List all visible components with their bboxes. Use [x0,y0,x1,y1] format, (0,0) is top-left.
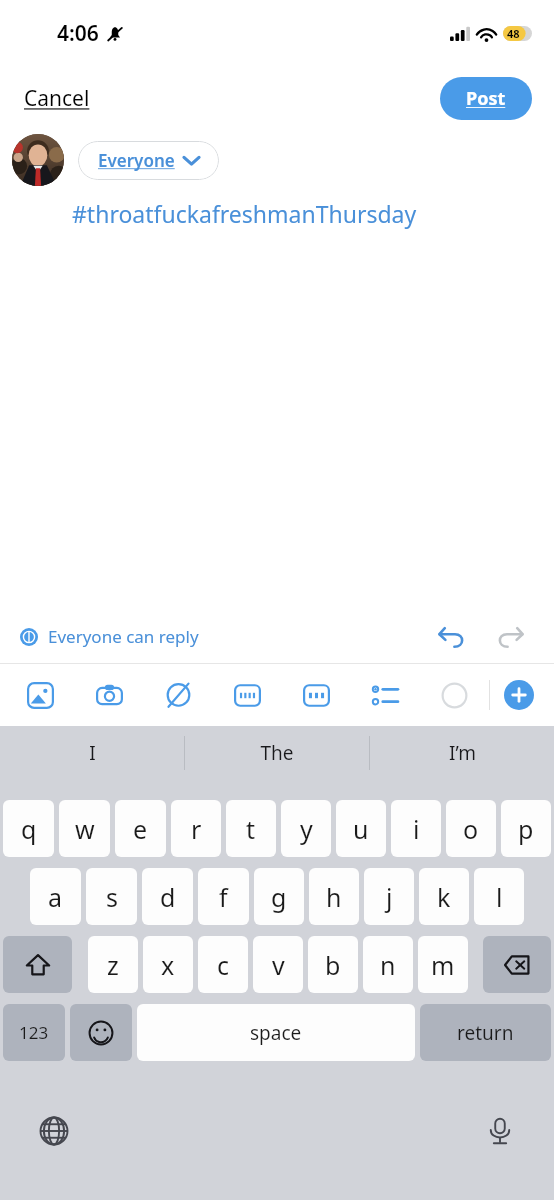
staticText: Post [466,86,506,111]
button[interactable]: Go live [213,664,282,726]
button[interactable]: Schedule [420,664,489,726]
staticText: z [107,948,119,982]
button[interactable]: g [254,868,304,925]
staticText: y [300,812,313,846]
staticText: u [353,812,369,846]
button[interactable]: l [474,868,524,925]
staticText: i [413,812,420,846]
button[interactable]: Everyone can reply [20,625,199,648]
button[interactable]: Switch keyboard [32,1109,76,1153]
button[interactable]: Redo [490,616,530,656]
staticText: r [191,812,202,846]
button[interactable]: Everyone [78,141,219,180]
staticText: space [250,1020,302,1046]
button[interactable]: t [226,800,276,857]
button[interactable]: r [171,800,221,857]
button[interactable]: Camera [75,664,144,726]
staticText: I [89,740,96,766]
staticText: 4:06 [57,19,99,48]
staticText: Everyone can reply [48,625,199,648]
staticText: n [380,948,396,982]
button[interactable]: Backspace [483,936,551,993]
button[interactable]: a [30,868,81,925]
staticText: v [272,948,285,982]
staticText: c [217,948,230,982]
button[interactable]: o [446,800,496,857]
button[interactable]: j [364,868,414,925]
staticText: k [437,880,451,914]
button[interactable]: space [137,1004,415,1061]
button[interactable]: Add poll [351,664,420,726]
staticText: m [431,948,455,982]
button[interactable]: Emoji [70,1004,132,1061]
button[interactable]: The [185,726,369,780]
staticText: 123 [19,1021,49,1044]
button[interactable]: b [308,936,358,993]
button[interactable]: v [253,936,303,993]
button[interactable]: i [391,800,441,857]
button[interactable]: w [59,800,110,857]
staticText: Everyone [98,149,175,172]
button[interactable]: I [0,726,184,780]
button[interactable]: u [336,800,386,857]
staticText: h [326,880,342,914]
button[interactable]: c [198,936,248,993]
staticText: I’m [449,740,476,766]
staticText: w [75,812,95,846]
button[interactable]: Undo [432,616,472,656]
button[interactable]: 123 [3,1004,65,1061]
button[interactable]: I’m [370,726,554,780]
button[interactable]: d [142,868,193,925]
button[interactable]: n [363,936,413,993]
staticText: p [518,812,534,846]
staticText: d [160,880,176,914]
button[interactable]: e [115,800,166,857]
button[interactable]: x [143,936,193,993]
staticText: 48 [507,26,520,41]
button[interactable]: h [309,868,359,925]
staticText: t [246,812,256,846]
button[interactable]: z [88,936,138,993]
button[interactable]: y [281,800,331,857]
staticText: s [106,880,118,914]
button[interactable]: q [3,800,54,857]
button[interactable]: Post [440,77,532,120]
staticText: Cancel [24,84,90,113]
staticText: o [463,812,479,846]
button[interactable]: Add [490,680,548,710]
staticText: e [133,812,148,846]
button[interactable]: Dictate [478,1109,522,1153]
button[interactable]: Add GIF [282,664,351,726]
button[interactable]: m [418,936,468,993]
button[interactable]: p [501,800,551,857]
staticText: q [21,812,37,846]
button[interactable]: Edit image [144,664,213,726]
button[interactable]: s [86,868,137,925]
button[interactable]: Shift [3,936,72,993]
staticText: l [496,880,503,914]
staticText: return [457,1020,514,1046]
button[interactable]: k [419,868,469,925]
staticText: g [271,880,287,914]
staticText: j [386,880,393,914]
button[interactable]: f [198,868,249,925]
staticText: a [48,880,63,914]
staticText: f [219,880,228,914]
staticText: x [161,948,175,982]
staticText: b [325,948,341,982]
button[interactable]: Add photo [6,664,75,726]
staticText: The [260,740,294,766]
staticText: #throatfuckafreshmanThursday [72,198,417,229]
button[interactable]: return [420,1004,551,1061]
button[interactable]: Cancel [20,78,94,119]
